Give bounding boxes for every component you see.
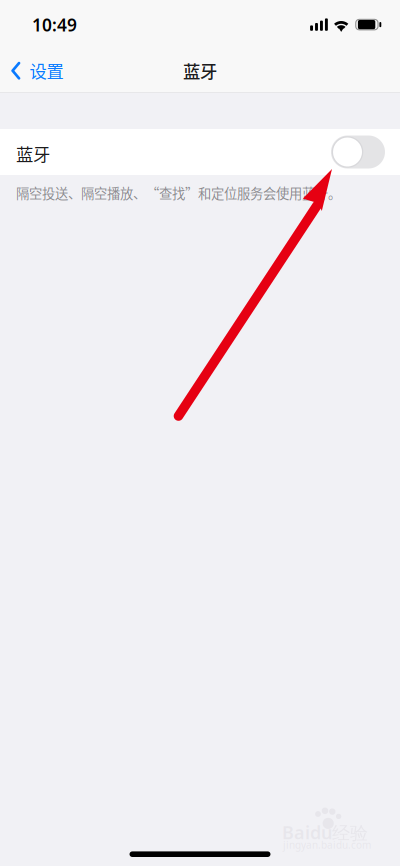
button[interactable]: 设置 [0,48,73,93]
staticText: 10:49 [32,13,77,37]
staticText: 蓝牙 [183,58,217,83]
staticText: 隔空投送、隔空播放、“查找”和定位服务会使用蓝牙。 [16,183,341,202]
staticText: 设置 [29,58,63,83]
staticText: Baidu经验 [282,820,368,845]
staticText: 蓝牙 [16,141,50,166]
button[interactable]: 蓝牙 [0,129,400,175]
staticText: jingyan.baidu.com [283,838,371,852]
